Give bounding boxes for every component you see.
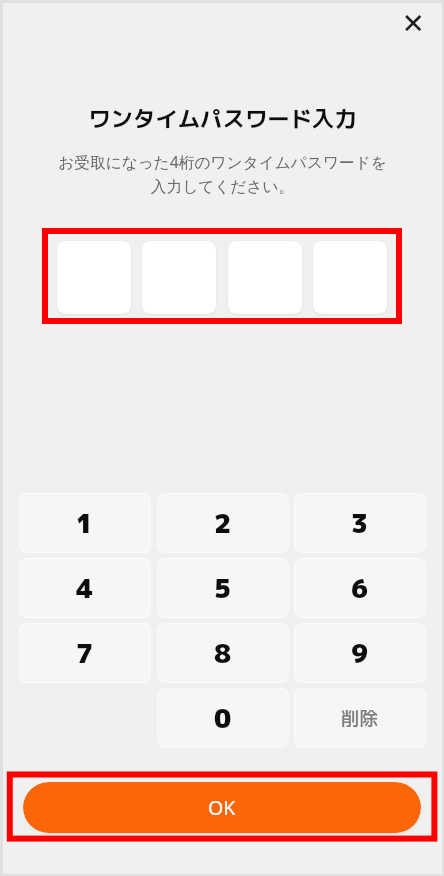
staticText: 9	[351, 635, 369, 671]
button[interactable]: Close	[393, 3, 433, 43]
staticText: 5	[214, 570, 232, 606]
button[interactable]: 8	[157, 623, 289, 683]
staticText: 削除	[341, 705, 379, 731]
button[interactable]: 削除	[294, 688, 426, 748]
staticText: ワンタイムパスワード入力	[88, 103, 357, 134]
staticText: 7	[76, 635, 94, 671]
button[interactable]: 2	[157, 493, 289, 553]
button[interactable]: 4	[19, 558, 151, 618]
staticText: 1	[76, 505, 94, 541]
staticText: お受取になった4桁のワンタイムパスワードを 入力してください。	[58, 151, 387, 197]
button[interactable]: 7	[19, 623, 151, 683]
staticText: 2	[214, 505, 232, 541]
staticText: 0	[214, 700, 232, 736]
button[interactable]: 1	[19, 493, 151, 553]
button[interactable]: 5	[157, 558, 289, 618]
button[interactable]: 9	[294, 623, 426, 683]
staticText: OK	[208, 794, 236, 821]
button[interactable]: 3	[294, 493, 426, 553]
button[interactable]: 6	[294, 558, 426, 618]
button[interactable]: 0	[157, 688, 289, 748]
button[interactable]: OK	[23, 782, 421, 833]
staticText: 4	[76, 570, 94, 606]
staticText: 3	[351, 505, 369, 541]
staticText: 8	[214, 635, 232, 671]
staticText: 6	[351, 570, 369, 606]
